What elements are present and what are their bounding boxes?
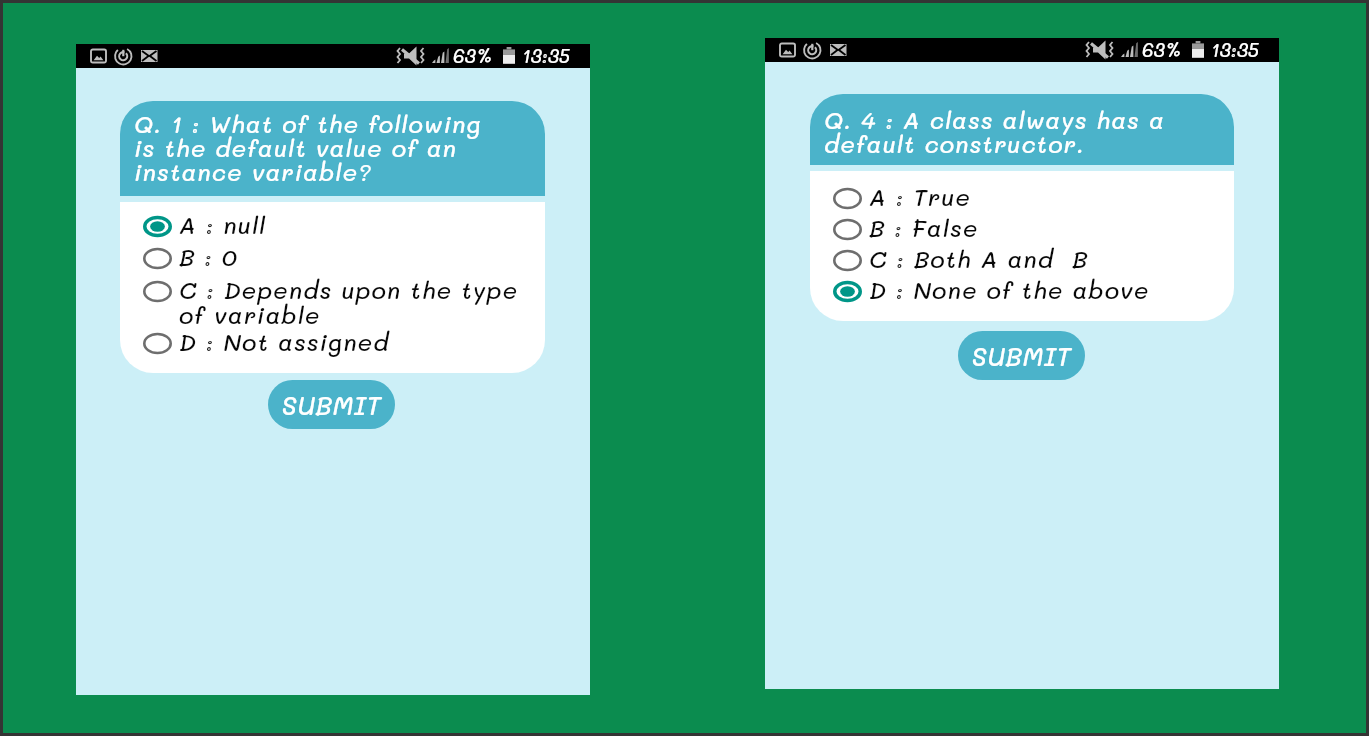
button[interactable]: B : 0 (142, 241, 537, 272)
staticText: 13:35 (1211, 37, 1259, 61)
staticText: Q. 1 : What of the following (134, 108, 482, 139)
staticText: 13:35 (522, 43, 570, 67)
button[interactable]: B : False (832, 212, 1226, 243)
button[interactable]: D : Not assigned (142, 326, 537, 357)
staticText: B : 0 (179, 241, 238, 272)
button[interactable]: D : None of the above (832, 274, 1226, 305)
staticText: C : Depends upon the type of variable (179, 274, 519, 330)
staticText: instance variable? (134, 156, 372, 187)
button[interactable]: C : Depends upon the type of variable (142, 274, 537, 330)
staticText: D : Not assigned (179, 326, 390, 357)
staticText: is the default value of an (134, 132, 457, 163)
staticText: 63% (453, 43, 493, 67)
button[interactable]: Battery 63 percent (1193, 38, 1279, 62)
button[interactable]: Alarm / power notification (810, 38, 842, 62)
staticText: C : Both A and B (869, 243, 1089, 274)
button[interactable]: C : Both A and B (832, 243, 1226, 274)
staticText: A : null (179, 209, 267, 240)
staticText: 63% (1142, 37, 1182, 61)
button[interactable]: Screenshot notification (88, 44, 121, 68)
button[interactable]: SUBMIT (958, 331, 1085, 380)
button[interactable]: A : True (832, 181, 1226, 212)
staticText: SUBMIT (971, 339, 1072, 373)
staticText: Q. 4 : A class always has a (824, 104, 1165, 135)
button[interactable]: Ringer muted (1139, 38, 1170, 62)
staticText: SUBMIT (281, 388, 382, 422)
button[interactable]: Mobile signal strength (1170, 38, 1193, 62)
button[interactable]: Mobile signal strength (481, 44, 504, 68)
button[interactable]: SUBMIT (268, 380, 395, 429)
staticText: B : False (869, 212, 979, 243)
button[interactable]: Alarm / power notification (121, 44, 153, 68)
button[interactable]: Ringer muted (450, 44, 481, 68)
staticText: A : True (869, 181, 971, 212)
button[interactable]: New mail notification (842, 38, 868, 62)
button[interactable]: New mail notification (153, 44, 179, 68)
staticText: default constructor. (824, 128, 1085, 159)
button[interactable]: Battery 63 percent (504, 44, 590, 68)
staticText: D : None of the above (869, 274, 1150, 305)
button[interactable]: A : null (142, 209, 537, 240)
button[interactable]: Screenshot notification (777, 38, 810, 62)
